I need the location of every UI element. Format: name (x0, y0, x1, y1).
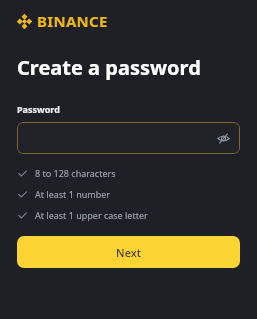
staticText: Password (17, 103, 60, 115)
button[interactable]: BINANCE (17, 10, 108, 32)
staticText: Next (116, 245, 141, 260)
staticText: At least 1 number (35, 188, 111, 200)
staticText: At least 1 upper case letter (35, 209, 148, 221)
button[interactable]: Show password (17, 122, 240, 154)
staticText: BINANCE (37, 11, 108, 31)
button[interactable]: Show password (214, 129, 232, 147)
staticText: Create a password (17, 54, 201, 81)
staticText: 8 to 128 characters (35, 167, 116, 179)
button[interactable]: Next (17, 236, 240, 268)
